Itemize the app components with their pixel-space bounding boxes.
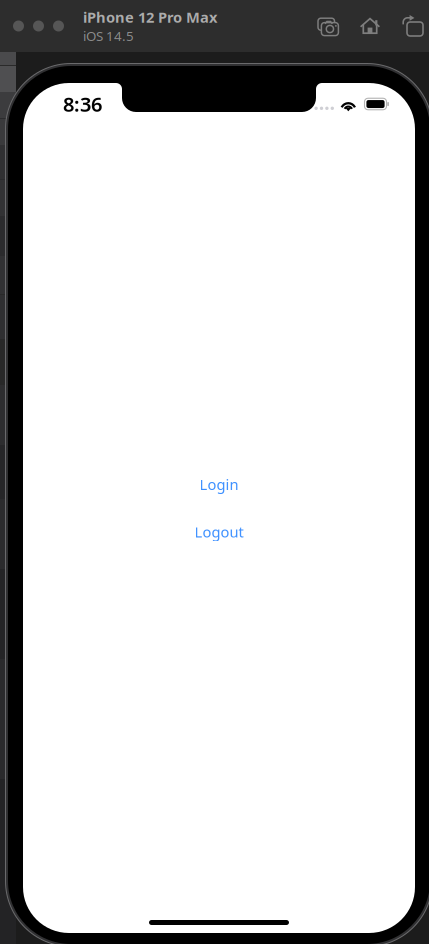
button[interactable]: Screenshot bbox=[317, 15, 339, 37]
button[interactable]: Rotate bbox=[401, 15, 423, 37]
button[interactable]: Login bbox=[199, 474, 238, 494]
button[interactable]: Logout bbox=[194, 522, 243, 541]
staticText: Logout bbox=[194, 522, 243, 541]
button[interactable]: Minimize bbox=[33, 20, 44, 31]
staticText: iPhone 12 Pro Max bbox=[83, 7, 217, 27]
button[interactable]: Zoom bbox=[53, 20, 64, 31]
staticText: 8:36 bbox=[63, 91, 102, 117]
button[interactable]: Close bbox=[13, 20, 24, 31]
staticText: iOS 14.5 bbox=[83, 27, 134, 45]
staticText: Login bbox=[199, 474, 238, 494]
button[interactable]: Home bbox=[359, 15, 381, 37]
